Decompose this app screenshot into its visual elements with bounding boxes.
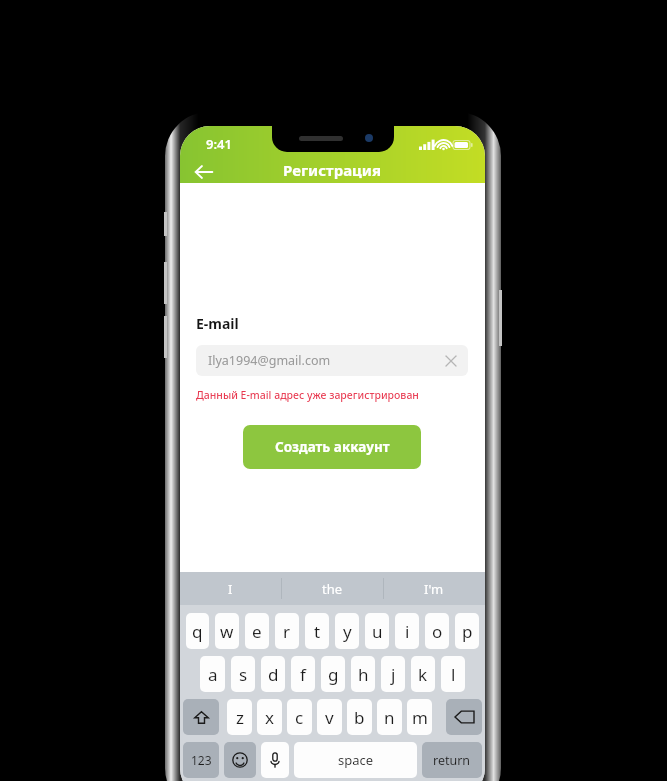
button[interactable]: t bbox=[305, 613, 329, 649]
staticText: 123 bbox=[191, 752, 212, 768]
button[interactable]: y bbox=[335, 613, 359, 649]
button[interactable]: v bbox=[317, 699, 342, 735]
staticText: d bbox=[268, 663, 279, 686]
staticText: r bbox=[283, 620, 291, 643]
staticText: I bbox=[228, 580, 233, 598]
button[interactable]: i bbox=[395, 613, 419, 649]
staticText: space bbox=[338, 751, 374, 769]
button[interactable]: m bbox=[407, 699, 432, 735]
staticText: i bbox=[405, 620, 410, 643]
staticText: u bbox=[372, 620, 383, 643]
staticText: v bbox=[325, 706, 334, 729]
button[interactable]: j bbox=[381, 656, 405, 692]
staticText: z bbox=[236, 706, 244, 729]
button[interactable]: c bbox=[287, 699, 312, 735]
staticText: t bbox=[314, 620, 321, 643]
staticText: q bbox=[192, 620, 203, 643]
button[interactable]: I'm bbox=[383, 572, 485, 605]
button[interactable]: space bbox=[294, 742, 417, 778]
staticText: p bbox=[462, 620, 473, 643]
button[interactable]: q bbox=[186, 613, 209, 649]
staticText: s bbox=[239, 663, 248, 686]
button[interactable]: w bbox=[215, 613, 239, 649]
staticText: e bbox=[252, 620, 262, 643]
button[interactable]: the bbox=[281, 572, 383, 605]
staticText: the bbox=[322, 580, 343, 598]
button[interactable]: a bbox=[200, 656, 225, 692]
button[interactable]: return bbox=[422, 742, 482, 778]
button[interactable]: h bbox=[351, 656, 375, 692]
button[interactable]: Создать аккаунт bbox=[243, 425, 421, 469]
button[interactable]: k bbox=[411, 656, 435, 692]
staticText: n bbox=[384, 706, 395, 729]
staticText: j bbox=[391, 663, 396, 686]
staticText: Регистрация bbox=[283, 160, 382, 180]
staticText: l bbox=[451, 663, 456, 686]
button[interactable]: z bbox=[227, 699, 252, 735]
staticText: I'm bbox=[424, 580, 444, 598]
button[interactable]: s bbox=[231, 656, 255, 692]
staticText: k bbox=[418, 663, 428, 686]
staticText: a bbox=[208, 663, 218, 686]
button[interactable]: Emoji bbox=[224, 742, 256, 778]
button[interactable]: Dictate bbox=[261, 742, 289, 778]
staticText: g bbox=[328, 663, 339, 686]
button[interactable]: Shift bbox=[183, 699, 219, 735]
staticText: h bbox=[358, 663, 369, 686]
button[interactable]: Back bbox=[186, 154, 222, 190]
staticText: Данный E-mail адрес уже зарегистрирован bbox=[196, 388, 419, 402]
button[interactable]: u bbox=[365, 613, 389, 649]
staticText: f bbox=[300, 663, 306, 686]
button[interactable]: Clear bbox=[440, 350, 462, 372]
staticText: b bbox=[354, 706, 365, 729]
staticText: 9:41 bbox=[206, 135, 232, 153]
button[interactable]: b bbox=[347, 699, 372, 735]
button[interactable]: I bbox=[180, 572, 281, 605]
staticText: o bbox=[432, 620, 443, 643]
button[interactable]: 123 bbox=[183, 742, 219, 778]
staticText: x bbox=[265, 706, 274, 729]
button[interactable]: e bbox=[245, 613, 269, 649]
button[interactable]: Ilya1994@gmail.com bbox=[196, 345, 468, 376]
button[interactable]: f bbox=[291, 656, 315, 692]
staticText: E-mail bbox=[196, 314, 239, 333]
staticText: c bbox=[295, 706, 304, 729]
staticText: m bbox=[412, 706, 428, 729]
button[interactable]: Backspace bbox=[446, 699, 482, 735]
staticText: w bbox=[220, 620, 234, 643]
staticText: y bbox=[343, 620, 352, 643]
staticText: Ilya1994@gmail.com bbox=[208, 352, 331, 369]
button[interactable]: g bbox=[321, 656, 345, 692]
button[interactable]: d bbox=[261, 656, 285, 692]
button[interactable]: n bbox=[377, 699, 402, 735]
staticText: return bbox=[433, 752, 471, 769]
button[interactable]: p bbox=[455, 613, 479, 649]
button[interactable]: o bbox=[425, 613, 449, 649]
button[interactable]: l bbox=[441, 656, 465, 692]
button[interactable]: x bbox=[257, 699, 282, 735]
button[interactable]: r bbox=[275, 613, 299, 649]
staticText: Создать аккаунт bbox=[275, 438, 390, 456]
